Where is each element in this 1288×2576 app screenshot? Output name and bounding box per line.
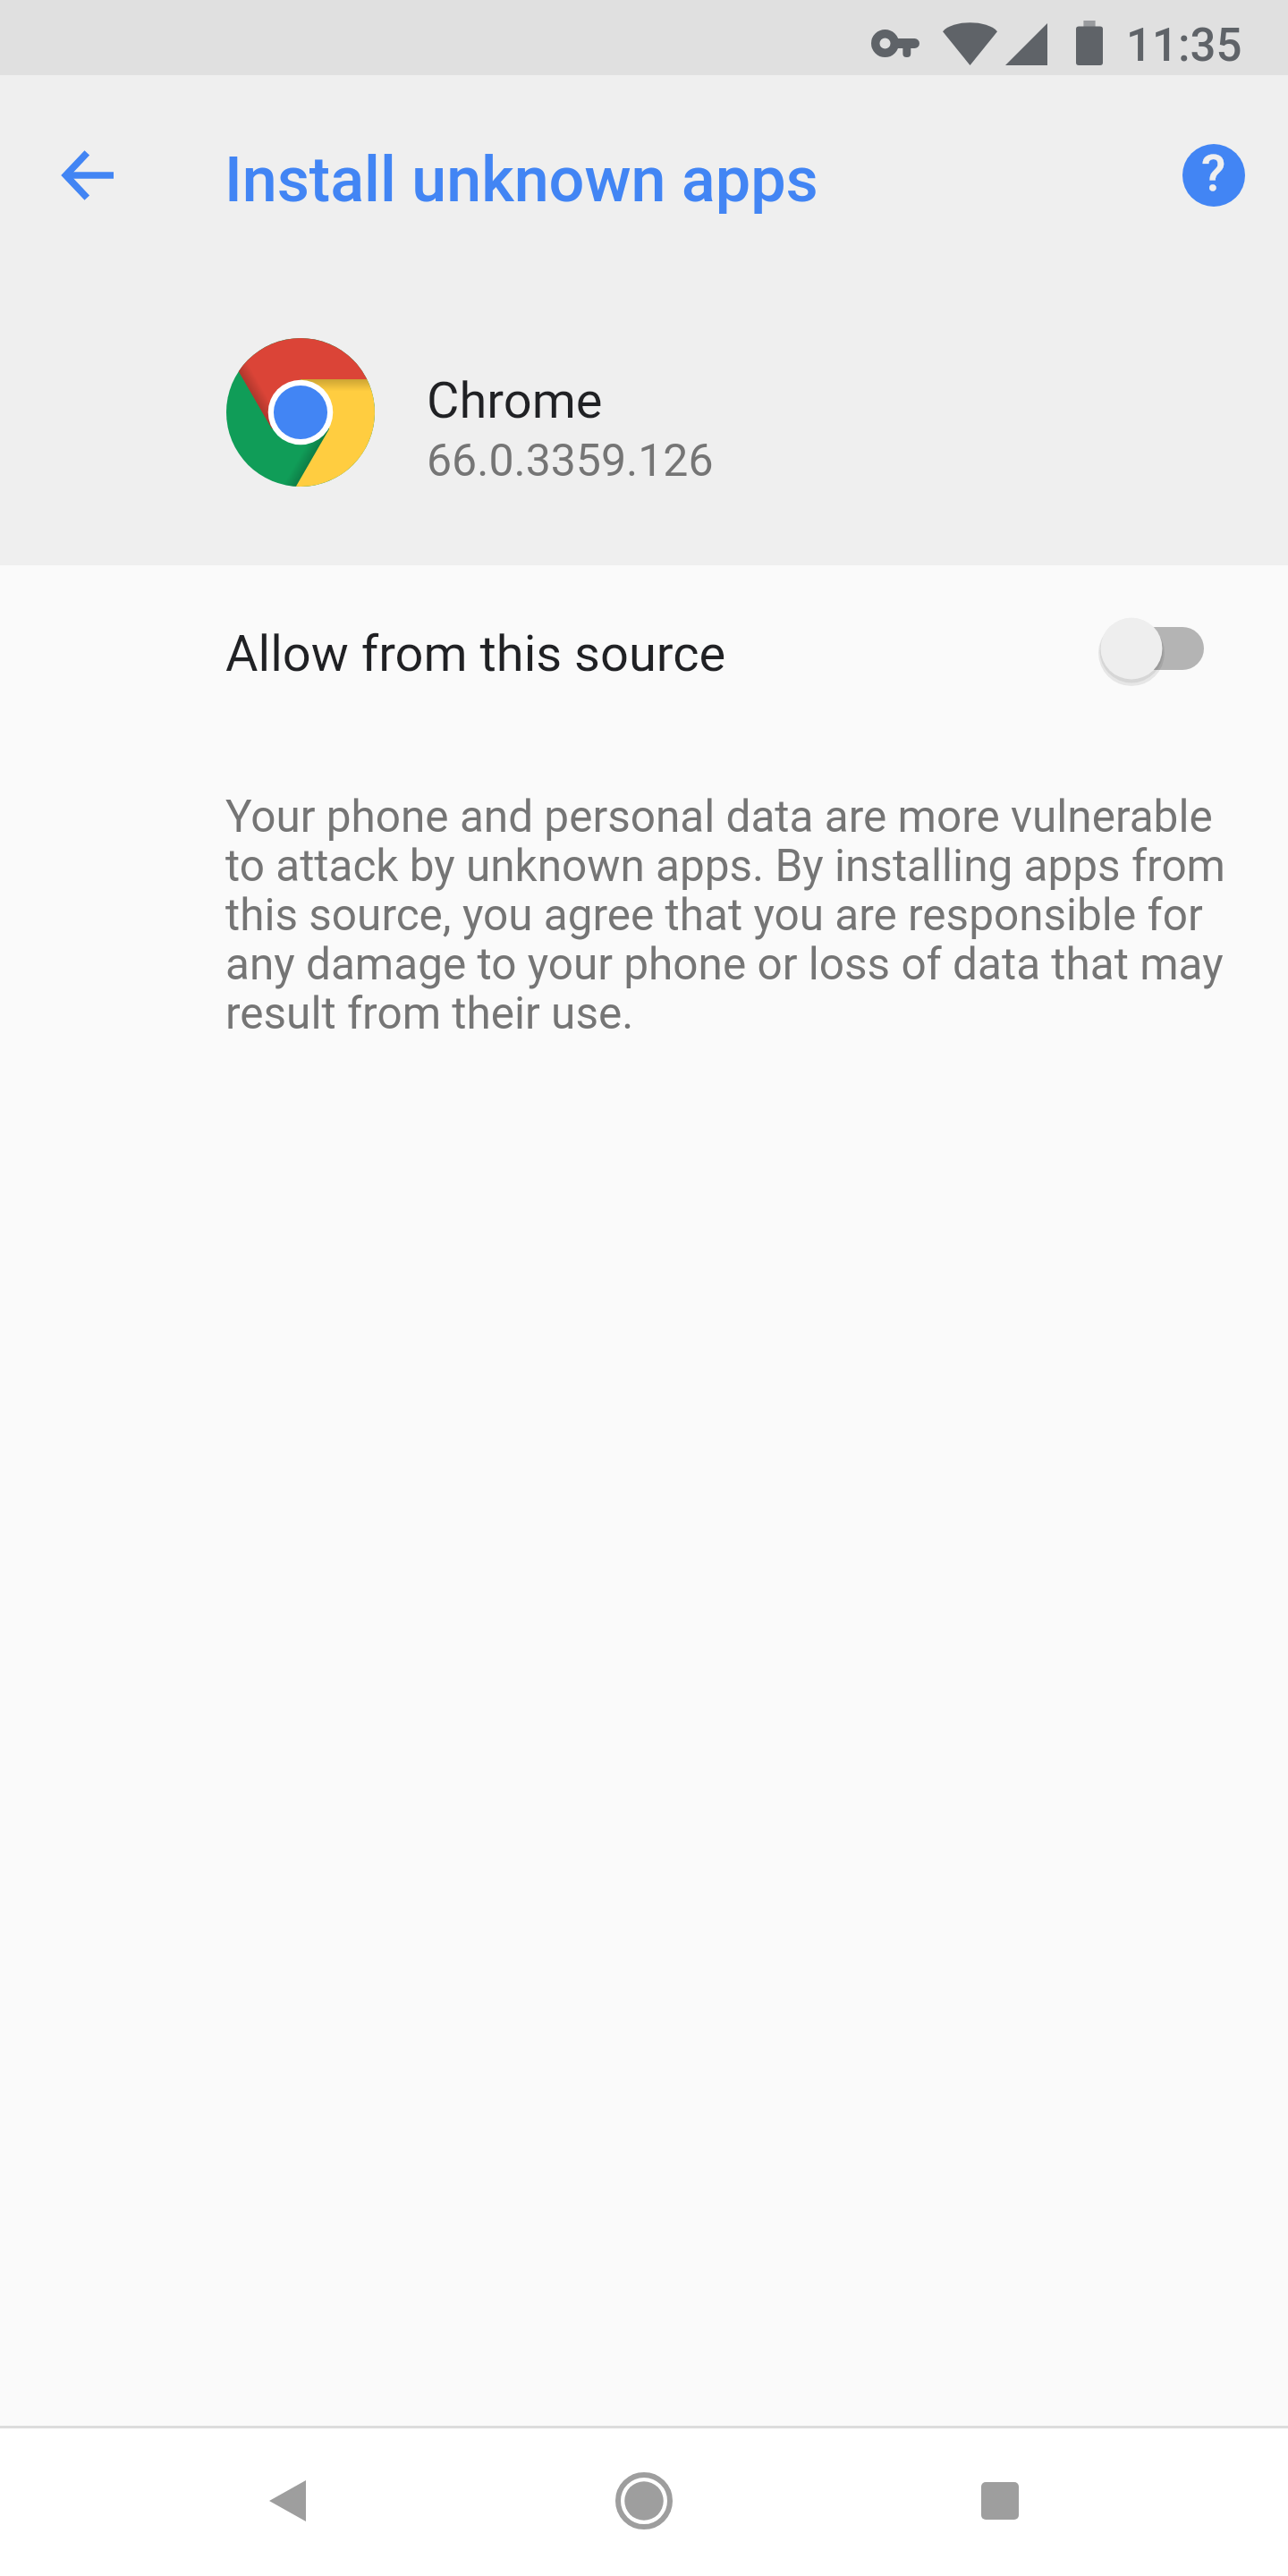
staticText: Allow from this source bbox=[225, 624, 726, 683]
button[interactable]: Help bbox=[1163, 124, 1264, 225]
button[interactable]: Home bbox=[572, 2431, 716, 2574]
staticText: 66.0.3359.126 bbox=[427, 435, 714, 487]
staticText: Install unknown apps bbox=[225, 143, 818, 216]
button[interactable]: Allow from this source bbox=[0, 565, 1288, 731]
button[interactable]: Recent apps bbox=[928, 2431, 1072, 2574]
staticText: ? bbox=[1201, 144, 1226, 203]
button[interactable]: Back bbox=[216, 2431, 359, 2574]
button[interactable]: Navigate up bbox=[38, 124, 139, 225]
staticText: Your phone and personal data are more vu… bbox=[225, 791, 1241, 1039]
staticText: 11:35 bbox=[1126, 19, 1242, 72]
staticText: Chrome bbox=[427, 371, 603, 430]
